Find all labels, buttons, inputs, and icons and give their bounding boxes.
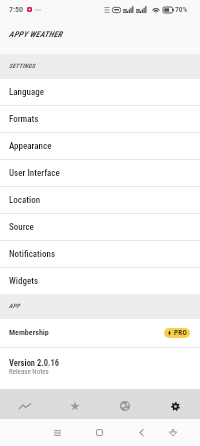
staticText: PRO xyxy=(174,329,187,337)
button[interactable]: Membership xyxy=(0,319,200,347)
button[interactable]: Back xyxy=(131,419,151,446)
staticText: Formats xyxy=(9,114,39,125)
button[interactable]: Radar xyxy=(100,389,150,419)
staticText: Location xyxy=(9,195,41,206)
button[interactable]: Widgets xyxy=(0,268,200,294)
staticText: User Interface xyxy=(9,168,60,179)
button[interactable]: Appearance xyxy=(0,133,200,159)
button[interactable]: Recent apps xyxy=(47,419,67,446)
button[interactable]: User Interface xyxy=(0,160,200,186)
staticText: APPY WEATHER xyxy=(9,30,63,39)
button[interactable]: Location xyxy=(0,187,200,213)
button[interactable]: Source xyxy=(0,214,200,240)
button[interactable]: Hide xyxy=(163,419,183,446)
staticText: Version 2.0.16 xyxy=(9,358,60,368)
button[interactable]: Forecast xyxy=(0,389,50,419)
staticText: Release Notes xyxy=(9,368,49,376)
button[interactable]: Notifications xyxy=(0,241,200,267)
button[interactable]: Settings xyxy=(150,389,200,419)
button[interactable]: Version 2.0.16 xyxy=(0,348,200,388)
staticText: 70% xyxy=(175,5,188,14)
staticText: Notifications xyxy=(9,249,56,260)
button[interactable]: Language xyxy=(0,79,200,105)
staticText: Widgets xyxy=(9,276,39,287)
button[interactable]: Formats xyxy=(0,106,200,132)
button[interactable]: Favorites xyxy=(50,389,100,419)
staticText: 7:50 xyxy=(9,5,24,14)
staticText: Language xyxy=(9,87,44,98)
button[interactable]: Home xyxy=(89,419,109,446)
staticText: Membership xyxy=(9,328,49,337)
staticText: APP xyxy=(9,302,20,309)
staticText: SETTINGS xyxy=(9,62,36,69)
staticText: Appearance xyxy=(9,141,52,152)
staticText: Source xyxy=(9,222,34,233)
